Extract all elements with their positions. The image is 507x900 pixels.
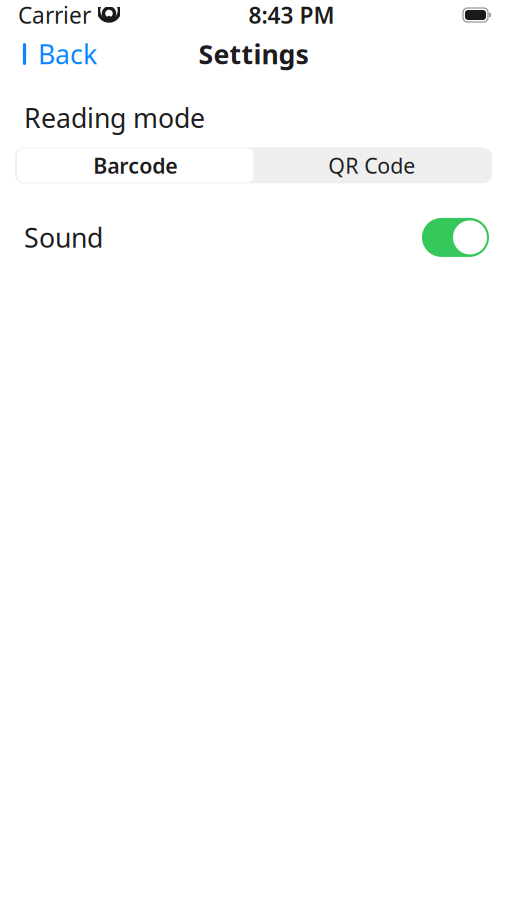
- staticText: Back: [38, 36, 97, 72]
- staticText: Settings: [198, 36, 308, 72]
- button[interactable]: Barcode: [17, 148, 253, 182]
- staticText: Barcode: [93, 151, 177, 179]
- staticText: Reading mode: [24, 100, 205, 135]
- button[interactable]: QR Code: [253, 148, 490, 182]
- button[interactable]: Sound: [422, 218, 489, 257]
- staticText: 8:43 PM: [248, 0, 334, 30]
- staticText: Sound: [24, 220, 103, 255]
- staticText: QR Code: [328, 151, 415, 179]
- button[interactable]: Back: [4, 28, 111, 80]
- staticText: Carrier: [18, 0, 91, 30]
